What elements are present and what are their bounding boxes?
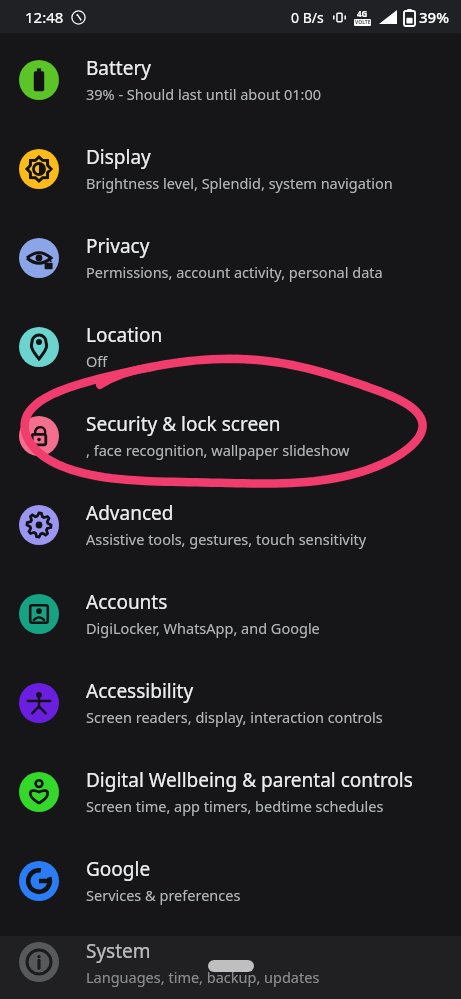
button[interactable]: Advanced	[0, 480, 461, 569]
button[interactable]: Display	[0, 124, 461, 213]
staticText: Off	[86, 351, 108, 371]
staticText: 4G	[357, 8, 368, 19]
staticText: VOLTE	[355, 19, 371, 26]
staticText: Accessibility	[86, 678, 194, 704]
staticText: Security & lock screen	[86, 411, 281, 437]
button[interactable]: Home	[208, 960, 254, 972]
staticText: , face recognition, wallpaper slideshow	[86, 440, 350, 460]
button[interactable]: Accessibility	[0, 658, 461, 747]
staticText: Screen time, app timers, bedtime schedul…	[86, 796, 384, 816]
staticText: 0 B/s	[291, 8, 324, 27]
staticText: 39%	[419, 7, 449, 27]
button[interactable]: Google	[0, 836, 461, 925]
button[interactable]: Privacy	[0, 213, 461, 302]
button[interactable]: Location	[0, 302, 461, 391]
staticText: Location	[86, 322, 163, 348]
staticText: Google	[86, 856, 151, 882]
staticText: Advanced	[86, 500, 174, 526]
staticText: Permissions, account activity, personal …	[86, 262, 383, 282]
staticText: Privacy	[86, 233, 150, 259]
button[interactable]: Battery	[0, 35, 461, 124]
staticText: Brightness level, Splendid, system navig…	[86, 173, 393, 193]
staticText: Battery	[86, 55, 151, 81]
button[interactable]: Accounts	[0, 569, 461, 658]
staticText: Digital Wellbeing & parental controls	[86, 767, 413, 793]
staticText: 12:48	[25, 7, 64, 27]
staticText: Display	[86, 144, 151, 170]
staticText: System	[86, 938, 151, 964]
staticText: Languages, time, backup, updates	[86, 967, 320, 987]
staticText: Services & preferences	[86, 885, 241, 905]
staticText: DigiLocker, WhatsApp, and Google	[86, 618, 320, 638]
button[interactable]: System	[0, 925, 461, 999]
button[interactable]: Security & lock screen	[0, 391, 461, 480]
button[interactable]: Digital Wellbeing & parental controls	[0, 747, 461, 836]
staticText: Assistive tools, gestures, touch sensiti…	[86, 529, 367, 549]
staticText: Accounts	[86, 589, 168, 615]
staticText: 39% - Should last until about 01:00	[86, 84, 322, 104]
staticText: Screen readers, display, interaction con…	[86, 707, 383, 727]
